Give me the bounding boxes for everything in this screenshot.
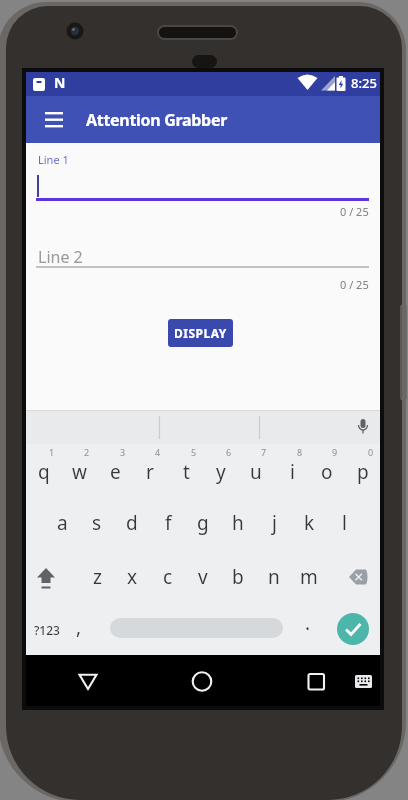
button[interactable]: y	[204, 459, 238, 485]
staticText: Attention Grabber	[86, 109, 228, 131]
button[interactable]	[40, 105, 70, 135]
button[interactable]: n	[257, 564, 291, 590]
button[interactable]: b	[221, 564, 255, 590]
staticText: .	[305, 610, 311, 636]
staticText: l	[342, 510, 347, 536]
button[interactable]	[337, 613, 369, 645]
button[interactable]: d	[115, 510, 149, 536]
staticText: n	[268, 564, 280, 590]
button[interactable]: g	[186, 510, 220, 536]
button[interactable]: i	[275, 459, 309, 485]
button[interactable]: t	[169, 459, 203, 485]
button[interactable]: v	[186, 564, 220, 590]
button[interactable]: ,	[62, 612, 96, 642]
staticText: c	[163, 564, 173, 590]
button[interactable]	[300, 665, 332, 697]
button[interactable]: e	[98, 459, 132, 485]
staticText: 8:25	[351, 74, 377, 92]
staticText: 0	[368, 446, 374, 458]
button[interactable]	[31, 557, 62, 597]
button[interactable]	[110, 618, 283, 638]
staticText: 9	[332, 446, 338, 458]
staticText: Line 2	[38, 246, 83, 266]
staticText: 8	[297, 446, 303, 458]
staticText: 0 / 25	[340, 277, 369, 291]
button[interactable]: k	[292, 510, 326, 536]
button[interactable]: .	[291, 608, 325, 638]
staticText: 2	[84, 446, 90, 458]
staticText: r	[146, 459, 154, 485]
button[interactable]: p	[346, 459, 380, 485]
staticText: i	[290, 459, 295, 485]
button[interactable]: s	[80, 510, 114, 536]
button[interactable]: c	[151, 564, 185, 590]
staticText: h	[232, 510, 244, 536]
staticText: 3	[120, 446, 126, 458]
button[interactable]	[72, 665, 104, 697]
staticText: 5	[191, 446, 197, 458]
button[interactable]: l	[327, 510, 361, 536]
staticText: x	[127, 564, 138, 590]
staticText: q	[38, 459, 50, 485]
staticText: ,	[76, 614, 82, 640]
button[interactable]: a	[45, 510, 79, 536]
staticText: 4	[155, 446, 161, 458]
button[interactable]	[351, 669, 377, 694]
button[interactable]: j	[257, 510, 291, 536]
staticText: p	[357, 459, 369, 485]
button[interactable]: q	[27, 459, 61, 485]
button[interactable]	[36, 165, 369, 201]
staticText: m	[300, 564, 318, 590]
staticText: f	[165, 510, 172, 536]
button[interactable]: o	[310, 459, 344, 485]
staticText: 1	[49, 446, 55, 458]
staticText: N	[54, 73, 66, 92]
staticText: y	[216, 459, 226, 485]
staticText: u	[250, 459, 262, 485]
button[interactable]: z	[80, 564, 114, 590]
button[interactable]: w	[62, 459, 96, 485]
button[interactable]: x	[115, 564, 149, 590]
staticText: t	[183, 459, 190, 485]
button[interactable]	[186, 665, 218, 697]
staticText: s	[92, 510, 102, 536]
staticText: 6	[226, 446, 232, 458]
button[interactable]	[341, 557, 373, 597]
button[interactable]	[351, 414, 375, 440]
staticText: w	[72, 459, 87, 485]
staticText: e	[110, 459, 121, 485]
staticText: ?123	[34, 622, 60, 638]
staticText: o	[321, 459, 333, 485]
button[interactable]: f	[151, 510, 185, 536]
staticText: b	[232, 564, 244, 590]
button[interactable]: u	[239, 459, 273, 485]
button[interactable]: r	[133, 459, 167, 485]
staticText: v	[198, 564, 208, 590]
staticText: d	[126, 510, 138, 536]
staticText: g	[197, 510, 209, 536]
staticText: a	[57, 510, 68, 536]
button[interactable]: h	[221, 510, 255, 536]
staticText: Line 1	[38, 152, 69, 166]
button[interactable]: DISPLAY	[168, 319, 233, 347]
button[interactable]: m	[292, 564, 326, 590]
staticText: 0 / 25	[340, 204, 369, 218]
button[interactable]: ?123	[28, 618, 66, 642]
staticText: j	[272, 510, 277, 536]
button[interactable]	[36, 240, 369, 268]
staticText: DISPLAY	[174, 325, 227, 341]
staticText: k	[304, 510, 315, 536]
staticText: 7	[261, 446, 267, 458]
staticText: z	[93, 564, 102, 590]
